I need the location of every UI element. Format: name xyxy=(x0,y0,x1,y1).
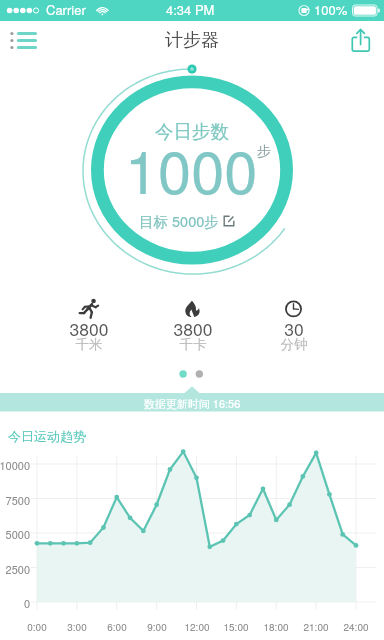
staticText: 3800 xyxy=(55,316,123,341)
staticText: 7500 xyxy=(0,492,30,508)
button[interactable]: Share xyxy=(344,22,378,56)
staticText: 步 xyxy=(257,143,271,161)
button[interactable]: 目标 5000步 xyxy=(136,207,238,234)
staticText: 计步器 xyxy=(0,29,384,52)
staticText: 数据更新时间 16:56 xyxy=(0,395,384,411)
staticText: 今日步数 xyxy=(0,120,384,143)
staticText: 千卡 xyxy=(159,336,227,353)
staticText: 目标 5000步 xyxy=(139,210,219,231)
staticText: 千米 xyxy=(55,336,123,353)
staticText: 12:00 xyxy=(179,620,215,634)
staticText: 100% xyxy=(314,0,348,19)
staticText: 21:00 xyxy=(298,620,334,634)
staticText: 24:00 xyxy=(338,620,374,634)
staticText: 分钟 xyxy=(260,336,328,353)
staticText: 0:00 xyxy=(19,620,55,634)
staticText: 10000 xyxy=(0,457,30,473)
button[interactable]: 3800 xyxy=(159,294,227,356)
staticText: 5000 xyxy=(0,526,30,542)
staticText: 30 xyxy=(260,316,328,341)
staticText: 15:00 xyxy=(218,620,254,634)
staticText: 3800 xyxy=(159,316,227,341)
staticText: 9:00 xyxy=(139,620,175,634)
staticText: 6:00 xyxy=(99,620,135,634)
staticText: Carrier xyxy=(46,0,86,19)
button[interactable]: 3800 xyxy=(55,294,123,356)
staticText: 0 xyxy=(0,595,30,611)
staticText: 3:00 xyxy=(59,620,95,634)
staticText: 2500 xyxy=(0,561,30,577)
button[interactable]: 30 xyxy=(260,294,328,356)
button[interactable]: Menu xyxy=(3,23,43,63)
staticText: 今日运动趋势 xyxy=(8,428,86,444)
staticText: 18:00 xyxy=(258,620,294,634)
staticText: 1000 xyxy=(125,126,258,211)
staticText: 4:34 PM xyxy=(166,0,215,19)
